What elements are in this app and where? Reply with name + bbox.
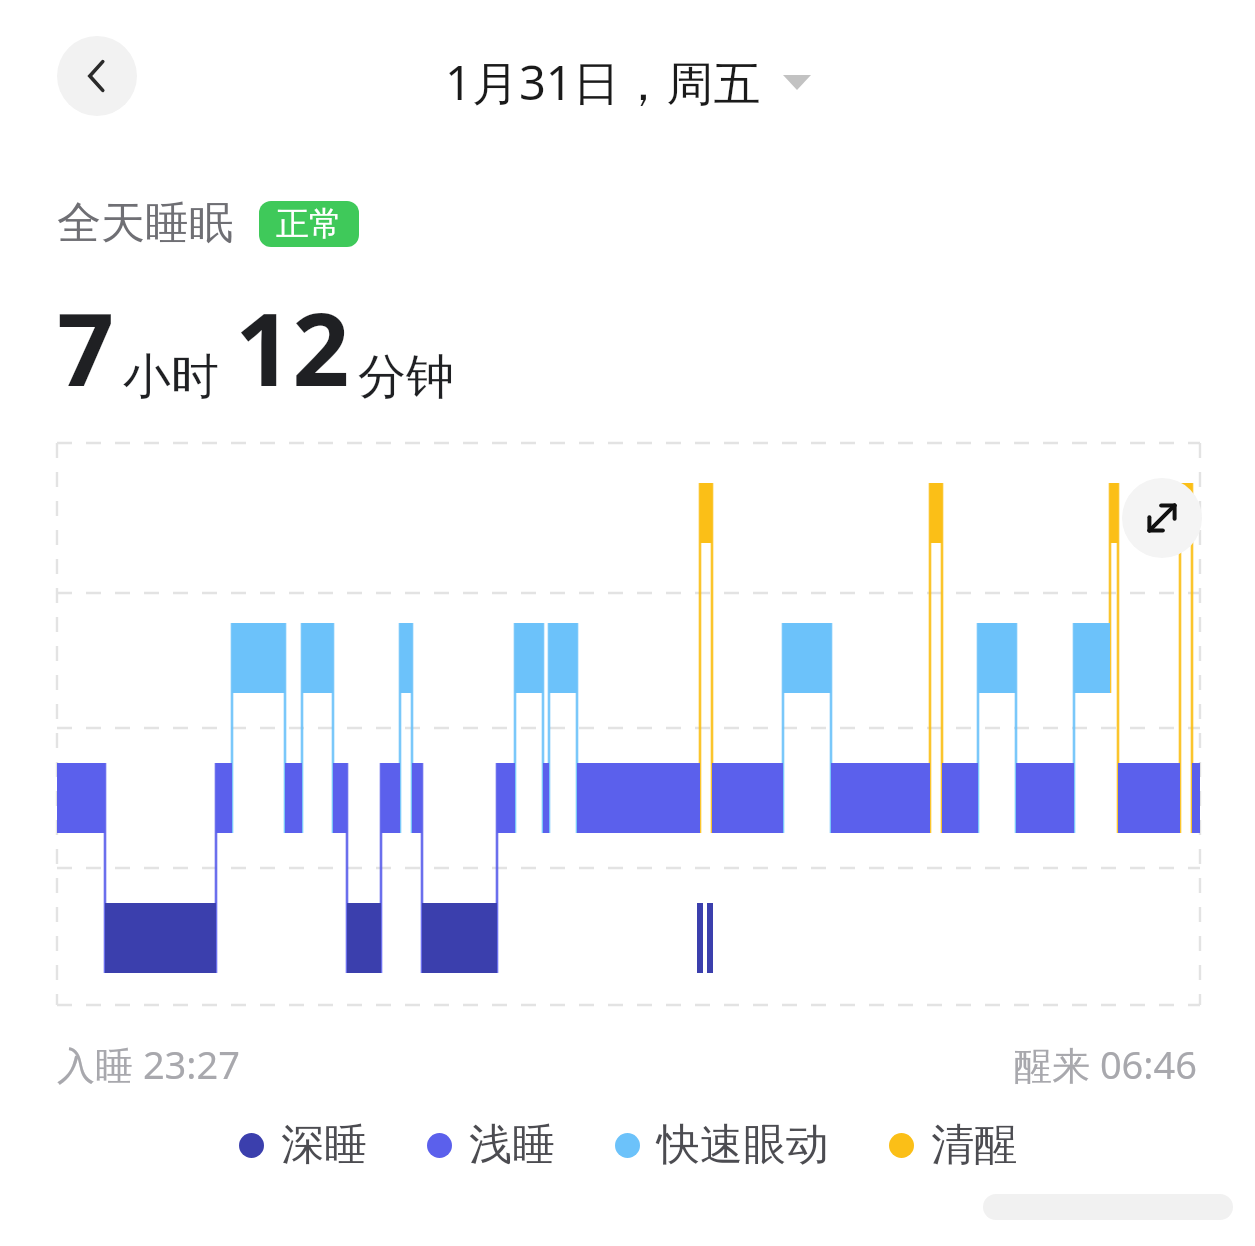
button[interactable]: 浅睡 bbox=[427, 1118, 555, 1172]
staticText: 清醒 bbox=[931, 1118, 1017, 1172]
staticText: 12 bbox=[235, 279, 350, 415]
staticText: 小时 bbox=[123, 347, 219, 407]
button[interactable]: 清醒 bbox=[889, 1118, 1017, 1172]
staticText: 深睡 bbox=[281, 1118, 367, 1172]
staticText: 7 bbox=[57, 279, 115, 415]
button[interactable]: Back bbox=[57, 36, 137, 116]
button[interactable]: Expand chart bbox=[1122, 478, 1202, 558]
staticText: 分钟 bbox=[358, 347, 454, 407]
button[interactable]: 深睡 bbox=[239, 1118, 367, 1172]
staticText: 醒来 06:46 bbox=[1014, 1038, 1198, 1090]
staticText: 入睡 23:27 bbox=[57, 1038, 241, 1090]
button[interactable]: 正常 bbox=[276, 203, 342, 245]
staticText: 1月31日，周五 bbox=[445, 50, 761, 114]
staticText: 浅睡 bbox=[469, 1118, 555, 1172]
staticText: 全天睡眠 bbox=[57, 196, 233, 251]
staticText: 正常 bbox=[276, 203, 342, 245]
button[interactable]: 快速眼动 bbox=[615, 1118, 829, 1172]
staticText: 快速眼动 bbox=[657, 1118, 829, 1172]
